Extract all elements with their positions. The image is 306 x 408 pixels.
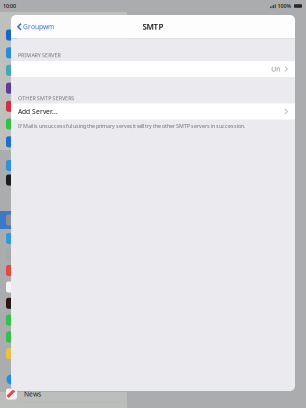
staticText: News xyxy=(24,390,41,398)
button[interactable]: Add Server... xyxy=(11,103,295,119)
button[interactable]: News xyxy=(0,385,127,402)
staticText: PRIMARY SERVER xyxy=(18,52,61,59)
staticText: Groupwm xyxy=(23,22,54,31)
staticText: Add Server... xyxy=(18,107,58,116)
button[interactable]: Groupwm xyxy=(11,15,59,38)
staticText: If Mail is unsuccessful using the primar… xyxy=(18,122,245,130)
staticText: OTHER SMTP SERVERS xyxy=(18,95,74,102)
staticText: SMTP xyxy=(142,21,163,32)
button[interactable]: On xyxy=(11,61,295,77)
staticText: 100% xyxy=(277,2,291,10)
staticText: 10:00 xyxy=(3,2,16,10)
staticText: On xyxy=(271,65,280,73)
